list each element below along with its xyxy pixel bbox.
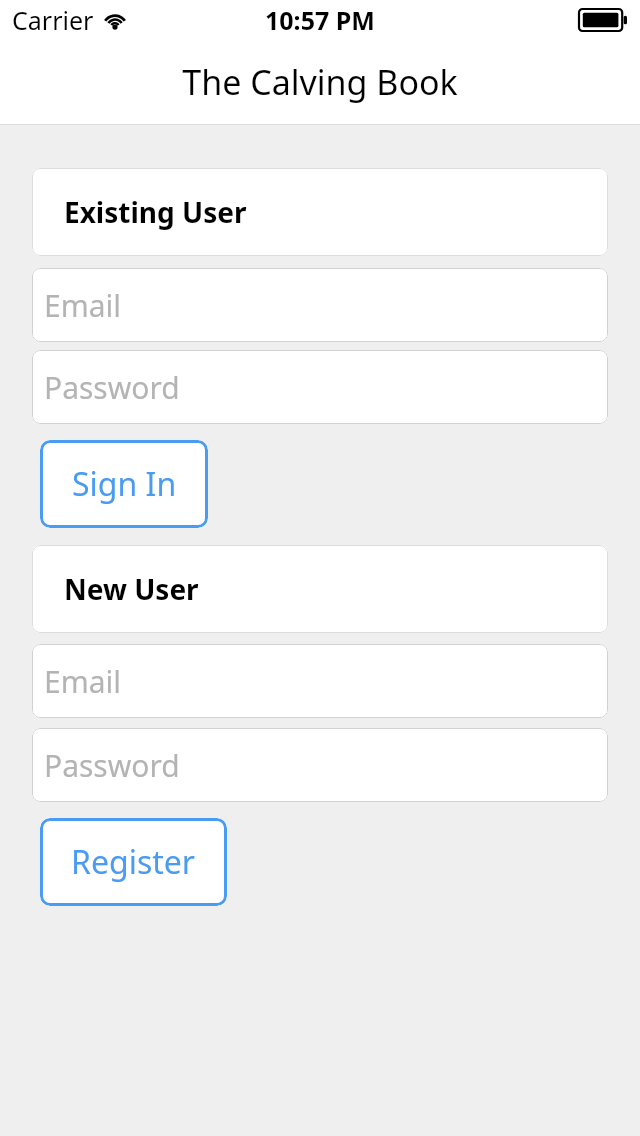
staticText: Password <box>44 745 180 786</box>
button[interactable]: New User <box>32 545 608 633</box>
staticText: Carrier <box>12 3 94 37</box>
button[interactable]: Password <box>32 350 608 424</box>
staticText: Email <box>44 661 122 702</box>
staticText: Register <box>71 840 196 884</box>
button[interactable]: Sign In <box>40 440 208 528</box>
button[interactable]: Email <box>32 268 608 342</box>
staticText: Existing User <box>64 193 247 231</box>
button[interactable]: Password <box>32 728 608 802</box>
staticText: Password <box>44 367 180 408</box>
staticText: Sign In <box>72 462 177 506</box>
staticText: Email <box>44 285 122 326</box>
staticText: New User <box>64 570 199 608</box>
button[interactable]: Register <box>40 818 227 906</box>
staticText: 10:57 PM <box>265 3 375 37</box>
staticText: The Calving Book <box>182 59 458 105</box>
button[interactable]: Existing User <box>32 168 608 256</box>
button[interactable]: Email <box>32 644 608 718</box>
